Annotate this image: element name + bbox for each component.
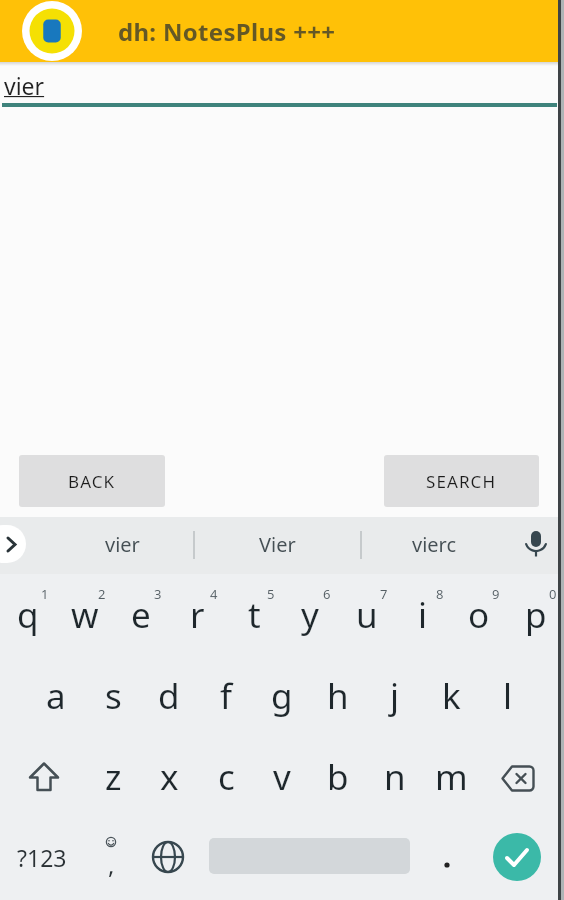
button[interactable]	[524, 531, 548, 561]
staticText: j	[390, 672, 400, 720]
staticText: x	[160, 753, 179, 801]
staticText: 9	[492, 585, 500, 603]
staticText: v	[273, 753, 291, 801]
staticText: d	[158, 672, 180, 720]
staticText: h	[327, 672, 349, 720]
button[interactable]: i	[395, 574, 451, 655]
staticText: 5	[267, 585, 275, 603]
staticText: BACK	[68, 470, 116, 493]
staticText: 8	[436, 585, 444, 603]
button[interactable]: m	[423, 736, 479, 817]
button[interactable]: j	[367, 655, 423, 736]
staticText: e	[131, 591, 151, 639]
staticText: u	[356, 591, 378, 639]
staticText: SEARCH	[426, 470, 497, 493]
staticText: 7	[380, 585, 388, 603]
button[interactable]: q	[0, 574, 56, 655]
staticText: 4	[210, 585, 218, 603]
staticText: 6	[323, 585, 331, 603]
button[interactable]: SEARCH	[384, 455, 539, 507]
staticText: s	[105, 672, 122, 720]
button[interactable]	[493, 833, 541, 881]
staticText: w	[71, 591, 99, 639]
button[interactable]	[440, 849, 454, 869]
staticText: z	[105, 753, 122, 801]
button[interactable]: o	[451, 574, 507, 655]
staticText: q	[17, 591, 39, 639]
staticText: ,	[108, 848, 115, 878]
button[interactable]: g	[254, 655, 310, 736]
staticText: vier	[4, 70, 45, 101]
staticText: k	[442, 672, 461, 720]
staticText: 3	[154, 585, 162, 603]
button[interactable]: f	[198, 655, 254, 736]
staticText: 0	[549, 585, 557, 603]
button[interactable]: u	[339, 574, 395, 655]
button[interactable]: y	[282, 574, 338, 655]
button[interactable]: p	[508, 574, 564, 655]
button[interactable]: d	[141, 655, 197, 736]
button[interactable]: e	[113, 574, 169, 655]
button[interactable]	[501, 765, 535, 792]
staticText: f	[220, 672, 233, 720]
button[interactable]: BACK	[19, 455, 165, 507]
staticText: c	[218, 753, 235, 801]
button[interactable]: a	[28, 655, 84, 736]
button[interactable]: h	[310, 655, 366, 736]
button[interactable]: z	[85, 736, 141, 817]
button[interactable]: l	[480, 655, 536, 736]
staticText: vierc	[412, 531, 457, 558]
staticText: t	[248, 591, 261, 639]
staticText: l	[503, 672, 513, 720]
staticText: Vier	[259, 531, 296, 558]
button[interactable]: s	[85, 655, 141, 736]
button[interactable]: c	[198, 736, 254, 817]
staticText: ?123	[17, 842, 67, 873]
staticText: o	[468, 591, 490, 639]
button[interactable]: n	[367, 736, 423, 817]
staticText: i	[418, 591, 428, 639]
button[interactable]	[151, 840, 185, 874]
staticText: 2	[98, 585, 106, 603]
button[interactable]: v	[254, 736, 310, 817]
staticText: 1	[41, 585, 49, 603]
button[interactable]: x	[141, 736, 197, 817]
staticText: vier	[105, 531, 140, 558]
staticText: b	[327, 753, 349, 801]
staticText: r	[190, 591, 205, 639]
button[interactable]: w	[57, 574, 113, 655]
staticText: g	[271, 672, 293, 720]
staticText: a	[46, 672, 66, 720]
staticText: dh: NotesPlus +++	[118, 15, 336, 48]
button[interactable]	[28, 762, 60, 792]
staticText: m	[435, 753, 468, 801]
button[interactable]: k	[423, 655, 479, 736]
button[interactable]: r	[169, 574, 225, 655]
button[interactable]: b	[310, 736, 366, 817]
staticText: p	[525, 591, 547, 639]
staticText: n	[384, 753, 406, 801]
staticText: y	[301, 591, 319, 639]
button[interactable]: t	[226, 574, 282, 655]
